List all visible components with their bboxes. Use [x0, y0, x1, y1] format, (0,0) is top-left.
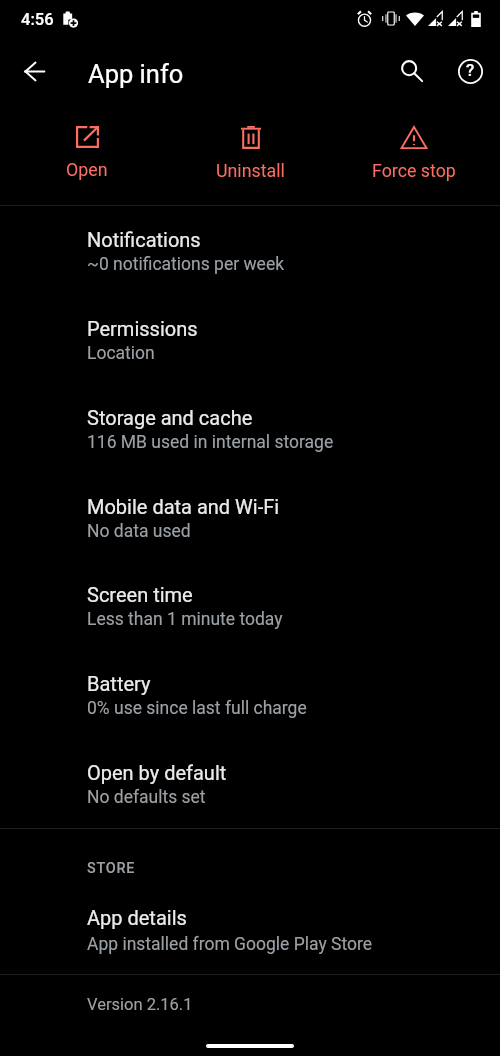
button[interactable]: App details — [0, 906, 500, 955]
button[interactable]: Mobile data and Wi-Fi — [0, 473, 500, 561]
button[interactable]: Open by default — [0, 739, 500, 827]
staticText: Open — [66, 159, 108, 180]
button[interactable]: Permissions — [0, 295, 500, 383]
staticText: ~0 notifications per week — [87, 254, 285, 275]
button[interactable]: Help — [446, 47, 494, 95]
staticText: Force stop — [372, 160, 456, 181]
staticText: App info — [88, 59, 184, 89]
staticText: Location — [87, 343, 155, 364]
staticText: 4:56 — [21, 10, 54, 29]
staticText: No data used — [87, 521, 191, 542]
button[interactable]: Back — [10, 47, 58, 95]
staticText: Mobile data and Wi-Fi — [87, 495, 280, 518]
staticText: Storage and cache — [87, 406, 253, 429]
staticText: No defaults set — [87, 787, 206, 808]
staticText: Less than 1 minute today — [87, 609, 283, 630]
button[interactable]: Screen time — [0, 561, 500, 649]
staticText: Battery — [87, 672, 151, 695]
staticText: Uninstall — [216, 160, 285, 181]
button[interactable]: Notifications — [0, 206, 500, 294]
staticText: Screen time — [87, 583, 193, 606]
button[interactable]: Force stop — [332, 105, 495, 181]
staticText: Open by default — [87, 761, 227, 784]
button[interactable]: Search — [388, 47, 436, 95]
button[interactable]: Storage and cache — [0, 384, 500, 472]
staticText: 116 MB used in internal storage — [87, 432, 334, 453]
button[interactable]: Open — [5, 105, 169, 180]
staticText: Version 2.16.1 — [87, 995, 193, 1014]
staticText: Permissions — [87, 317, 198, 340]
staticText: App details — [87, 906, 187, 929]
button[interactable]: Battery — [0, 650, 500, 738]
staticText: Notifications — [87, 228, 201, 251]
staticText: 0% use since last full charge — [87, 698, 307, 719]
staticText: ? — [466, 60, 475, 80]
button[interactable]: Uninstall — [169, 105, 332, 181]
staticText: STORE — [87, 860, 136, 877]
staticText: App installed from Google Play Store — [87, 934, 372, 955]
